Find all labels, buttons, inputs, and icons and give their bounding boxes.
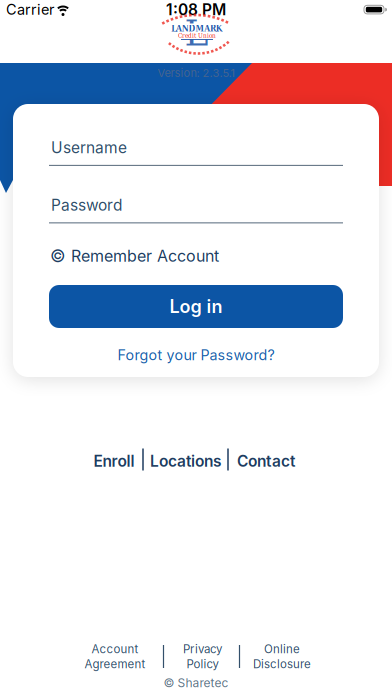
- staticText: Password: [51, 196, 122, 214]
- staticText: Remember Account: [71, 246, 219, 266]
- button[interactable]: Password: [49, 197, 343, 221]
- button[interactable]: Username: [49, 140, 343, 164]
- button[interactable]: Remember Account: [50, 246, 219, 266]
- staticText: L: [184, 12, 208, 54]
- staticText: Policy: [186, 657, 218, 671]
- staticText: Account: [91, 642, 138, 656]
- button[interactable]: Log in: [49, 285, 343, 328]
- staticText: Log in: [169, 296, 222, 317]
- staticText: Agreement: [84, 657, 145, 671]
- button[interactable]: Locations: [150, 452, 222, 470]
- button[interactable]: Contact: [237, 452, 295, 470]
- staticText: Privacy: [183, 642, 222, 656]
- staticText: Online: [264, 642, 300, 656]
- staticText: Forgot your Password?: [117, 346, 274, 364]
- staticText: Username: [51, 138, 127, 157]
- button[interactable]: Forgot your Password?: [117, 346, 274, 364]
- staticText: ©: [50, 246, 66, 266]
- staticText: Locations: [150, 452, 222, 470]
- button[interactable]: Online: [253, 642, 311, 671]
- staticText: Carrier: [6, 1, 54, 18]
- staticText: Enroll: [93, 452, 134, 470]
- staticText: 1:08 PM: [166, 0, 226, 19]
- staticText: Credit Union: [178, 32, 216, 39]
- staticText: Contact: [237, 452, 295, 470]
- button[interactable]: Account: [84, 642, 145, 671]
- staticText: © Sharetec: [163, 676, 228, 690]
- staticText: LANDMARK: [171, 23, 223, 33]
- staticText: Disclosure: [253, 657, 311, 671]
- button[interactable]: Privacy: [183, 642, 222, 671]
- button[interactable]: Enroll: [93, 452, 134, 470]
- staticText: Version: 2.3.5.1: [157, 66, 234, 80]
